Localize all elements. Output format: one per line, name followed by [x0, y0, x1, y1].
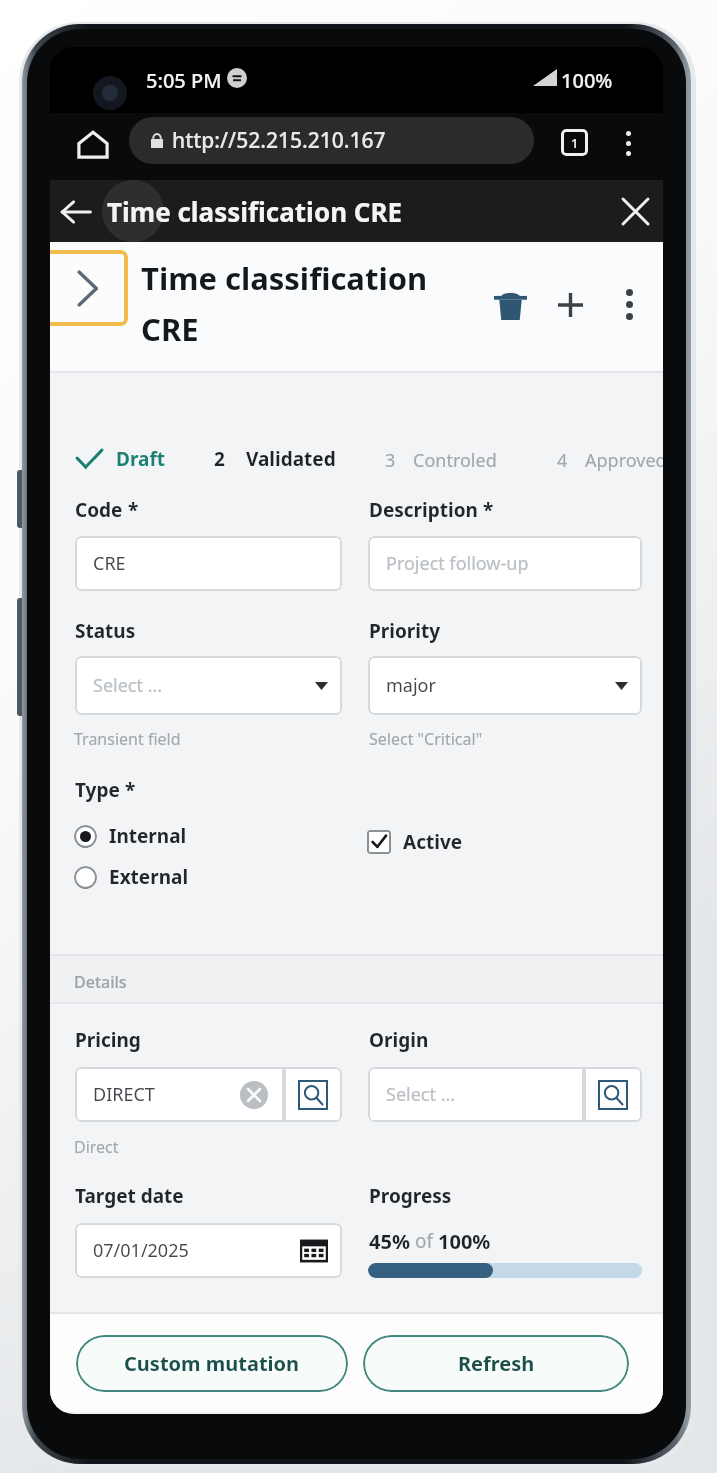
button[interactable]: Delete — [486, 281, 534, 329]
staticText: major — [386, 673, 436, 698]
button[interactable]: 4 — [557, 436, 663, 468]
button[interactable]: External — [74, 862, 189, 892]
staticText: Details — [74, 971, 127, 993]
staticText: Target date — [75, 1183, 184, 1209]
staticText: Select ... — [386, 1082, 456, 1107]
button[interactable]: More — [607, 282, 652, 327]
staticText: Transient field — [74, 728, 181, 750]
staticText: 4 — [557, 448, 568, 473]
staticText: * — [478, 497, 494, 523]
button[interactable]: Expand — [50, 250, 128, 326]
button[interactable]: Search — [584, 1067, 642, 1122]
staticText: http://52.215.210.167 — [172, 126, 386, 155]
staticText: 100% — [561, 67, 613, 94]
staticText: Active — [403, 829, 463, 855]
staticText: Status — [75, 618, 136, 644]
button[interactable]: major — [368, 656, 642, 715]
button[interactable]: Home — [72, 123, 114, 165]
button[interactable]: Back — [52, 188, 100, 236]
button[interactable]: Tabs — [551, 119, 597, 165]
staticText: Refresh — [458, 1350, 535, 1377]
staticText: Direct — [74, 1136, 119, 1158]
button[interactable]: Select ... — [75, 656, 342, 715]
staticText: of — [410, 1228, 438, 1254]
staticText: Draft — [116, 446, 166, 472]
button[interactable]: http://52.215.210.167 — [129, 117, 534, 164]
button[interactable]: Add — [546, 281, 594, 329]
button[interactable]: CRE — [75, 536, 342, 591]
button[interactable]: Custom mutation — [76, 1335, 348, 1392]
button[interactable]: 07/01/2025 — [75, 1223, 342, 1278]
staticText: Select "Critical" — [369, 728, 483, 750]
staticText: 45% — [369, 1228, 410, 1255]
staticText: 100% — [438, 1228, 491, 1255]
staticText: Validated — [246, 446, 336, 472]
button[interactable]: DIRECT — [75, 1067, 284, 1122]
staticText: 3 — [385, 448, 396, 473]
staticText: Type — [75, 777, 120, 803]
staticText: Time classification CRE — [107, 194, 403, 229]
button[interactable]: 2 — [214, 436, 344, 468]
staticText: 5:05 PM — [146, 67, 222, 94]
staticText: Progress — [369, 1183, 452, 1209]
staticText: 07/01/2025 — [93, 1238, 189, 1263]
staticText: Internal — [109, 823, 187, 849]
staticText: Project follow-up — [386, 551, 529, 576]
staticText: Custom mutation — [124, 1350, 300, 1377]
button[interactable]: Select ... — [368, 1067, 584, 1122]
staticText: Select ... — [93, 673, 163, 698]
staticText: DIRECT — [93, 1082, 155, 1107]
button[interactable]: Active — [367, 827, 463, 857]
button[interactable]: Project follow-up — [368, 536, 642, 591]
staticText: Origin — [369, 1027, 429, 1053]
button[interactable]: Clear — [240, 1081, 268, 1109]
button[interactable]: Refresh — [363, 1335, 629, 1392]
button[interactable]: More options — [608, 123, 648, 163]
button[interactable]: Internal — [74, 821, 187, 851]
staticText: * — [123, 497, 139, 523]
button[interactable]: Search — [284, 1067, 342, 1122]
staticText: CRE — [141, 308, 199, 350]
staticText: Time classification — [141, 257, 428, 299]
button[interactable]: Draft — [70, 436, 180, 468]
staticText: Approved — [585, 448, 663, 473]
staticText: 2 — [214, 446, 225, 472]
staticText: External — [109, 864, 189, 890]
button[interactable]: 3 — [385, 436, 510, 468]
button[interactable]: Close — [611, 187, 659, 235]
staticText: CRE — [93, 551, 126, 576]
staticText: Code — [75, 497, 123, 523]
staticText: Pricing — [75, 1027, 141, 1053]
staticText: Controled — [413, 448, 497, 473]
staticText: Priority — [369, 618, 441, 644]
staticText: Description — [369, 497, 478, 523]
staticText: * — [120, 777, 136, 803]
staticText: 1 — [571, 134, 579, 152]
